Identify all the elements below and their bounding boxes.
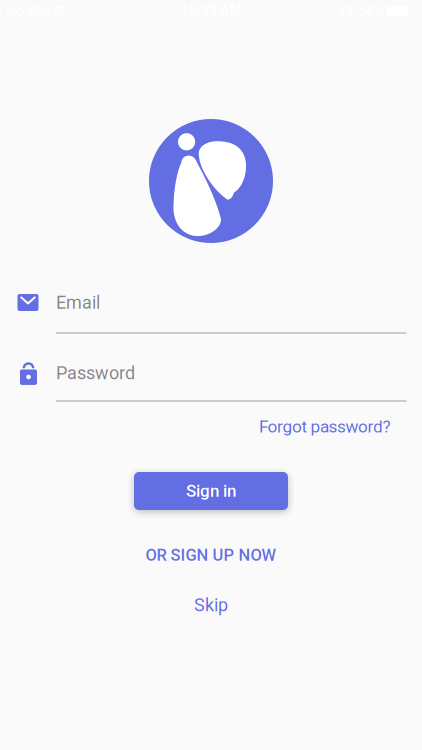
button[interactable]: Forgot password? xyxy=(50,416,390,437)
staticText: Password xyxy=(56,362,135,384)
button[interactable]: Email xyxy=(0,278,422,340)
button[interactable]: Password xyxy=(0,345,422,407)
button[interactable]: Skip xyxy=(194,594,228,616)
staticText: OR SIGN UP NOW xyxy=(145,545,276,565)
staticText: Email xyxy=(56,292,100,313)
button[interactable]: Sign in xyxy=(134,472,288,510)
staticText: Sign in xyxy=(186,481,236,501)
staticText: Forgot password? xyxy=(259,416,390,437)
button[interactable]: OR SIGN UP NOW xyxy=(145,545,276,565)
staticText: Skip xyxy=(194,594,228,616)
